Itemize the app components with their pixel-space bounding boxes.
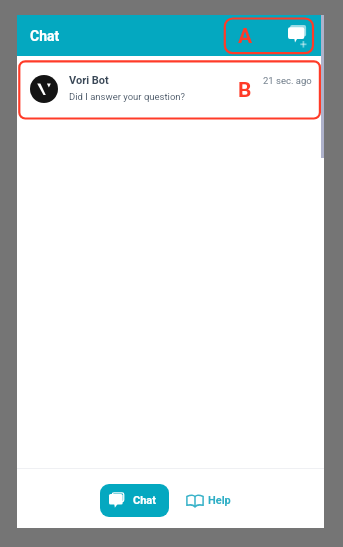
button[interactable]: New chat (284, 20, 316, 52)
staticText: A (238, 24, 253, 49)
staticText: B (238, 78, 252, 103)
button[interactable]: Help (186, 484, 231, 517)
staticText: Vori Bot (69, 74, 109, 87)
staticText: Did I answer your question? (69, 91, 186, 102)
button[interactable]: Chat (100, 484, 169, 517)
staticText: Chat (30, 28, 60, 44)
staticText: 21 sec. ago (263, 75, 312, 86)
button[interactable]: Vori Bot (17, 61, 324, 117)
staticText: Chat (133, 494, 156, 507)
staticText: Help (208, 494, 231, 507)
